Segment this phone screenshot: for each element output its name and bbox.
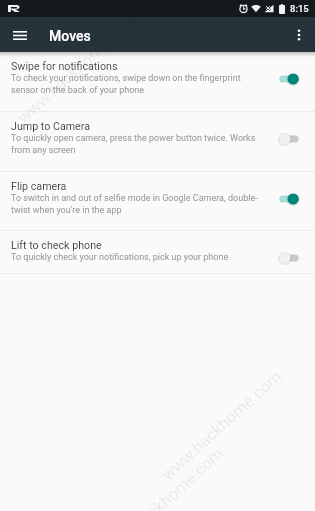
button[interactable]: Swipe for notifications [0,52,315,111]
staticText: Swipe for notifications [11,60,118,73]
staticText: Lift to check phone [11,239,102,252]
staticText: Jump to Camera [11,120,90,133]
staticText: To quickly check your notifications, pic… [11,252,229,263]
staticText: To check your notifications, swipe down … [11,73,260,95]
staticText: Flip camera [11,180,67,193]
staticText: To quickly open camera, press the power … [11,133,260,155]
button[interactable]: Open navigation menu [0,17,35,52]
staticText: 8:15 [290,3,309,14]
button[interactable]: Enabled [275,69,303,89]
button[interactable]: Lift to check phone [0,231,315,273]
button[interactable]: Disabled [275,129,303,149]
button[interactable]: Disabled [275,248,303,268]
button[interactable]: Flip camera [0,172,315,230]
staticText: Moves [49,28,91,44]
button[interactable]: More options [280,17,315,52]
button[interactable]: Enabled [275,189,303,209]
button[interactable]: Jump to Camera [0,112,315,171]
staticText: To switch in and out of selfie mode in G… [11,193,260,215]
